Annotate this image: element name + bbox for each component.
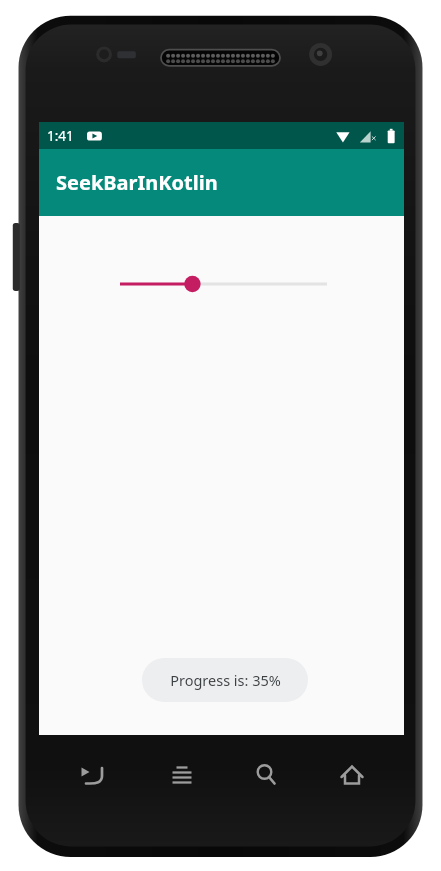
button[interactable]: Progress is: 35% [142, 658, 308, 702]
button[interactable]: Search [243, 755, 289, 795]
staticText: Progress is: 35% [170, 670, 281, 690]
button[interactable]: Home [329, 755, 375, 795]
staticText: 1:41 [47, 127, 74, 145]
button[interactable]: SeekBarInKotlin [39, 149, 404, 216]
button[interactable]: Seek bar, 35 percent [109, 266, 338, 302]
staticText: SeekBarInKotlin [56, 169, 218, 196]
button[interactable]: Back [70, 755, 116, 795]
button[interactable]: Menu [159, 755, 205, 795]
